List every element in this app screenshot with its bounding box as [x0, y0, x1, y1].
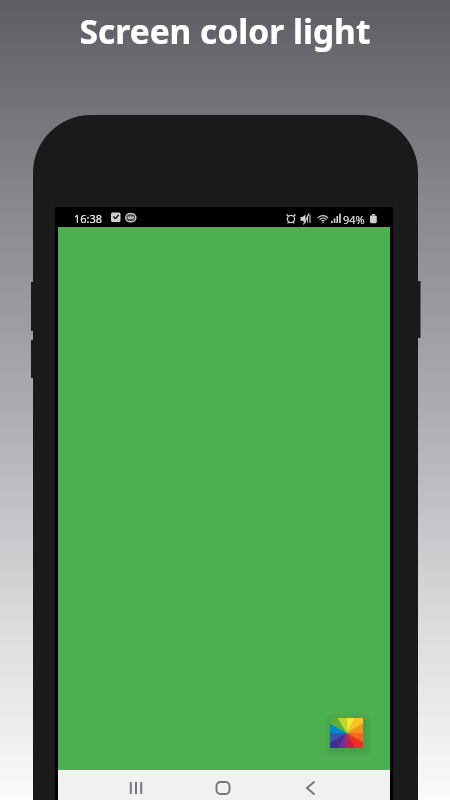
- button[interactable]: Choose color: [330, 718, 363, 748]
- button[interactable]: Recent apps: [120, 773, 152, 799]
- staticText: 16:38: [74, 211, 103, 226]
- staticText: 94%: [343, 212, 365, 227]
- button[interactable]: Home: [207, 773, 239, 799]
- button[interactable]: Back: [295, 773, 327, 799]
- staticText: Screen color light: [0, 8, 450, 54]
